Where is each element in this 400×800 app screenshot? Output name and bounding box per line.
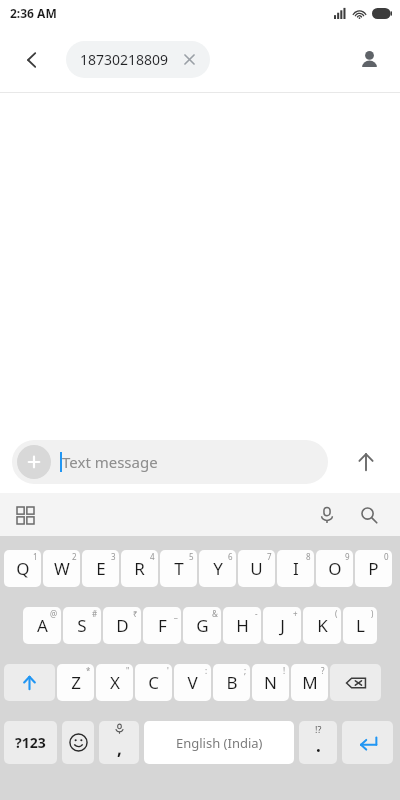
button[interactable]: 6 <box>199 550 236 587</box>
staticText: U <box>250 557 263 580</box>
button[interactable]: 3 <box>82 550 119 587</box>
button[interactable]: Back <box>12 40 52 80</box>
button[interactable]: : <box>174 664 211 701</box>
button[interactable]: Voice input <box>310 498 344 532</box>
other: Clear <box>183 53 196 66</box>
button[interactable]: Emoji <box>62 721 94 764</box>
button[interactable]: 8 <box>277 550 314 587</box>
staticText: 9 <box>345 551 350 562</box>
staticText: 2:36 AM <box>10 5 57 21</box>
button[interactable]: ?123 <box>4 721 57 764</box>
button[interactable]: Comma <box>99 721 139 764</box>
staticText: S <box>77 614 87 637</box>
button[interactable]: ; <box>213 664 250 701</box>
staticText: 8 <box>306 551 311 562</box>
button[interactable]: # <box>63 607 101 644</box>
button[interactable]: Send <box>344 440 388 484</box>
button[interactable]: 18730218809 <box>66 41 210 78</box>
button[interactable]: & <box>183 607 221 644</box>
staticText: 7 <box>267 551 272 562</box>
staticText: F <box>158 614 167 637</box>
button[interactable]: ₹ <box>103 607 141 644</box>
staticText: G <box>196 614 209 637</box>
staticText: : <box>205 665 208 676</box>
staticText: ' <box>167 665 169 676</box>
button[interactable]: ) <box>343 607 377 644</box>
staticText: ) <box>371 608 374 619</box>
button[interactable]: + <box>263 607 301 644</box>
staticText: N <box>264 671 277 694</box>
button[interactable]: 9 <box>316 550 353 587</box>
staticText: 0 <box>384 551 389 562</box>
staticText: 18730218809 <box>80 50 169 69</box>
button[interactable]: Backspace <box>330 664 381 701</box>
staticText: B <box>226 671 238 694</box>
other: Attach <box>17 445 51 479</box>
button[interactable]: 5 <box>160 550 197 587</box>
button[interactable]: _ <box>143 607 181 644</box>
staticText: " <box>126 665 130 676</box>
button[interactable]: 4 <box>121 550 158 587</box>
staticText: ? <box>321 665 325 676</box>
button[interactable]: ! <box>252 664 289 701</box>
staticText: E <box>96 557 106 580</box>
button[interactable]: 0 <box>355 550 392 587</box>
staticText: + <box>293 608 298 619</box>
staticText: 4 <box>150 551 155 562</box>
staticText: D <box>116 614 129 637</box>
staticText: . <box>316 734 321 757</box>
button[interactable]: Contact <box>348 39 390 81</box>
staticText: 2 <box>72 551 77 562</box>
staticText: 6 <box>228 551 233 562</box>
button[interactable]: Search <box>352 498 386 532</box>
staticText: Z <box>71 671 81 694</box>
staticText: A <box>37 614 48 637</box>
staticText: J <box>280 614 285 637</box>
staticText: P <box>368 557 379 580</box>
staticText: 1 <box>33 551 38 562</box>
button[interactable]: ' <box>135 664 172 701</box>
button[interactable]: Space <box>144 721 294 764</box>
staticText: C <box>148 671 159 694</box>
staticText: M <box>302 671 318 694</box>
staticText: Q <box>16 557 30 580</box>
staticText: English (India) <box>176 734 263 752</box>
staticText: L <box>356 614 365 637</box>
staticText: X <box>110 671 120 694</box>
button[interactable]: - <box>223 607 261 644</box>
staticText: !? <box>315 723 322 735</box>
staticText: Y <box>213 557 223 580</box>
button[interactable]: Enter <box>342 721 393 764</box>
staticText: 3 <box>111 551 116 562</box>
staticText: H <box>236 614 249 637</box>
button[interactable]: 2 <box>43 550 80 587</box>
staticText: , <box>117 737 122 760</box>
button[interactable]: ? <box>291 664 328 701</box>
staticText: - <box>255 608 258 619</box>
staticText: I <box>293 557 299 580</box>
staticText: # <box>92 608 98 619</box>
staticText: V <box>187 671 198 694</box>
button[interactable]: Shift <box>4 664 55 701</box>
staticText: * <box>86 665 91 676</box>
staticText: ( <box>335 608 338 619</box>
staticText: ₹ <box>133 608 138 619</box>
button[interactable]: 7 <box>238 550 275 587</box>
button[interactable]: @ <box>23 607 61 644</box>
staticText: O <box>328 557 342 580</box>
button[interactable]: 1 <box>4 550 41 587</box>
button[interactable]: Attach <box>12 440 328 484</box>
staticText: ; <box>244 665 247 676</box>
button[interactable]: Keyboard options <box>8 498 42 532</box>
staticText: T <box>174 557 184 580</box>
staticText: & <box>212 608 218 619</box>
button[interactable]: " <box>96 664 133 701</box>
staticText: 5 <box>189 551 194 562</box>
staticText: R <box>134 557 145 580</box>
staticText: ?123 <box>15 733 46 752</box>
button[interactable]: ( <box>303 607 341 644</box>
staticText: W <box>54 557 70 580</box>
button[interactable]: * <box>57 664 94 701</box>
staticText: _ <box>174 608 178 619</box>
button[interactable]: Period <box>299 721 337 764</box>
